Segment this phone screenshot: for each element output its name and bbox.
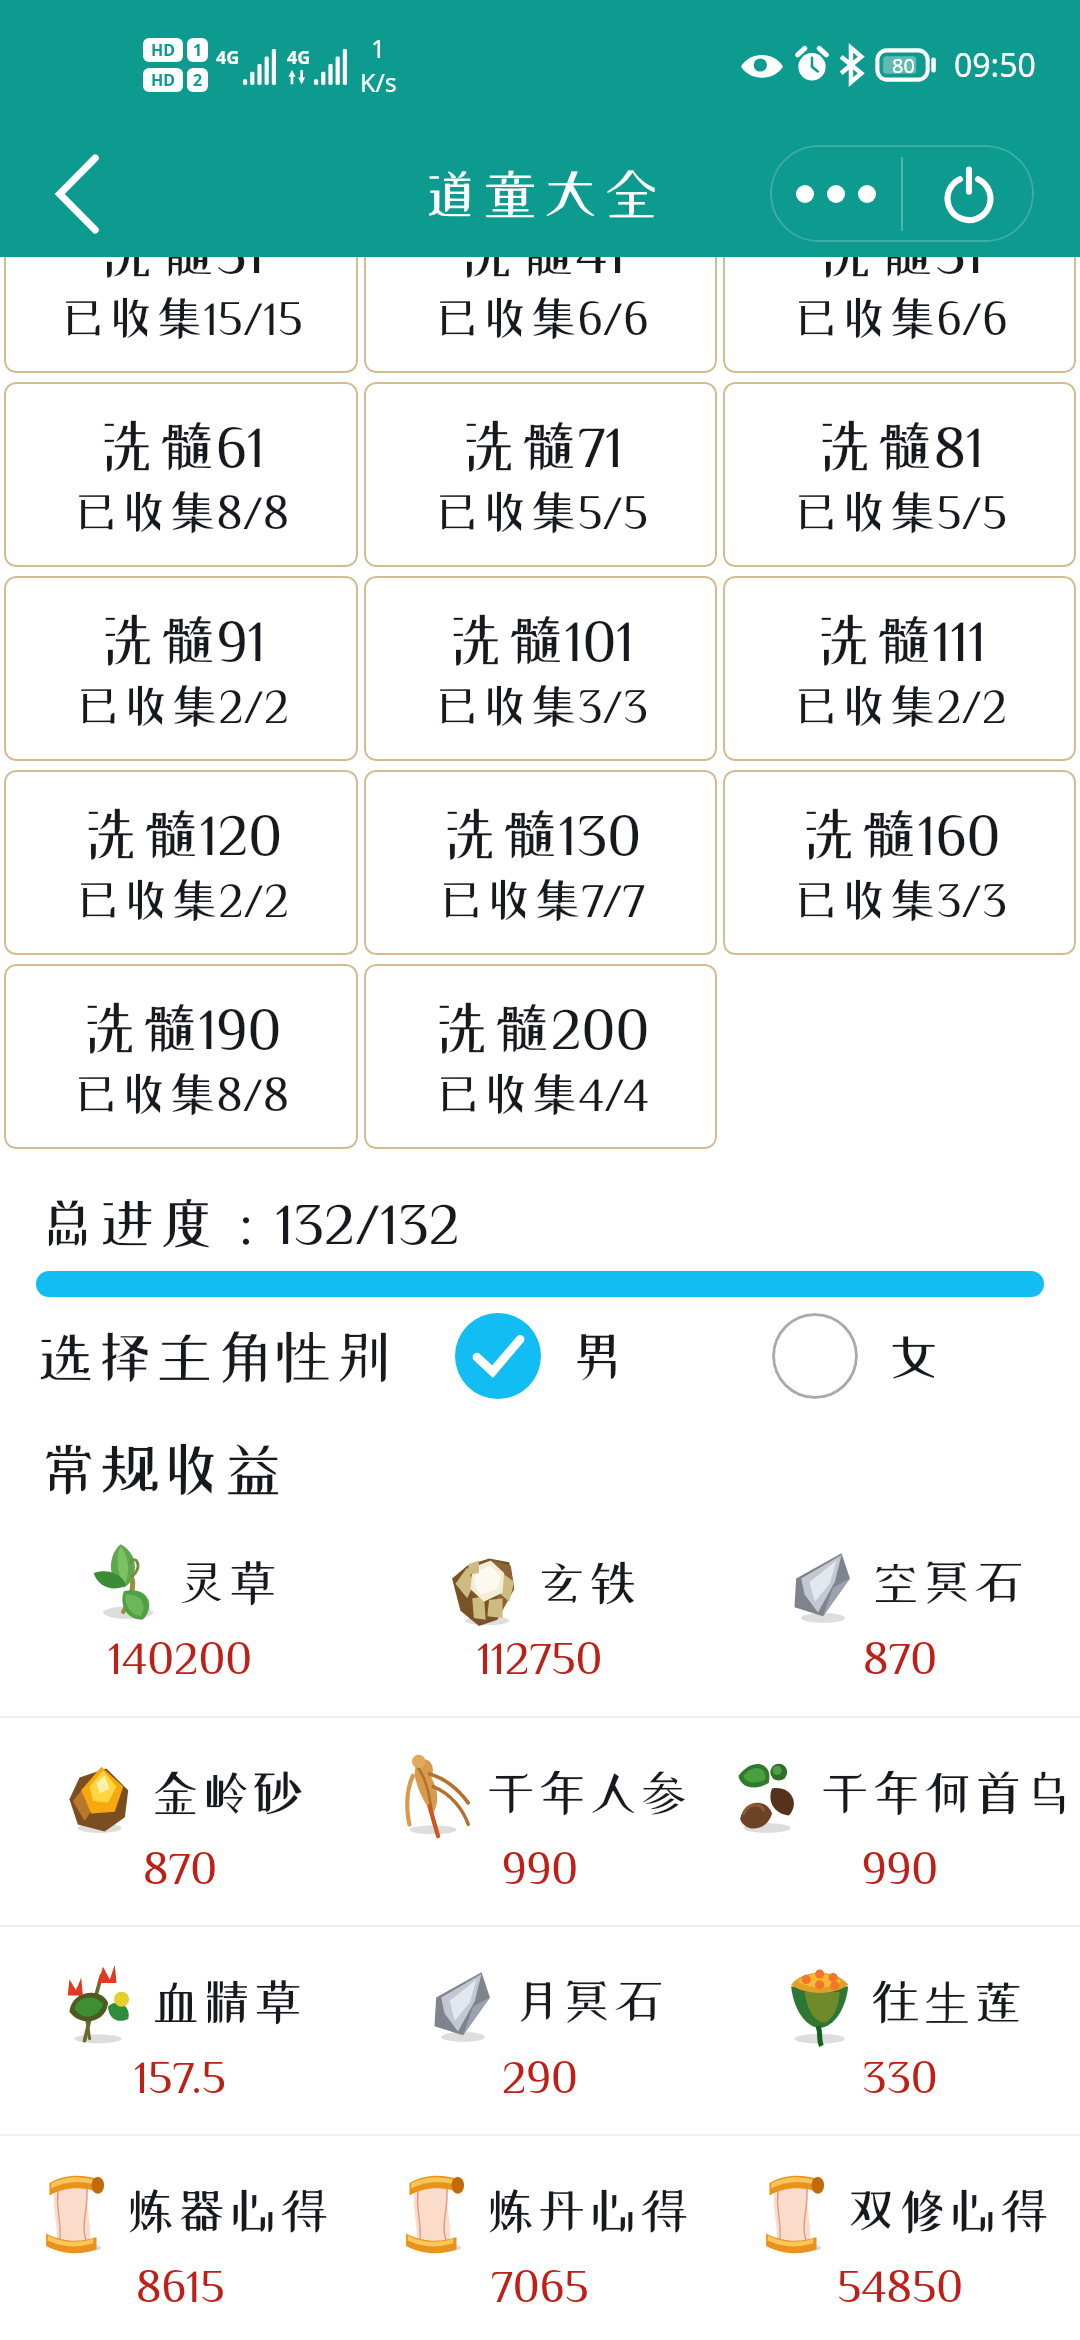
button[interactable]: 千年人参 <box>360 1718 720 1925</box>
staticText: 990 <box>862 1844 939 1890</box>
staticText: 洗髓200 <box>432 998 650 1056</box>
button[interactable]: 金岭砂 <box>0 1718 360 1925</box>
button[interactable]: Back <box>32 149 122 239</box>
staticText: 已收集8/8 <box>72 488 290 535</box>
staticText: K/s <box>360 65 397 99</box>
staticText: 洗髓190 <box>80 998 282 1056</box>
staticText: 290 <box>502 2053 578 2099</box>
button[interactable]: 洗髓101 <box>364 576 717 761</box>
button[interactable]: 玄铁 <box>360 1508 720 1716</box>
staticText: 已收集2/2 <box>74 876 289 923</box>
staticText: 洗髓101 <box>446 610 635 668</box>
button[interactable]: 洗髓81 <box>723 382 1076 567</box>
staticText: 洗髓51 <box>816 257 984 280</box>
button[interactable]: 男 <box>455 1306 627 1406</box>
staticText: 洗髓41 <box>457 257 626 280</box>
staticText: 洗髓61 <box>97 416 265 474</box>
button[interactable]: 洗髓41 <box>364 257 717 373</box>
staticText: 金岭砂 <box>150 1767 304 1817</box>
staticText: 990 <box>502 1844 579 1890</box>
staticText: 80 <box>892 52 915 79</box>
button[interactable]: 千年何首乌 <box>720 1718 1080 1925</box>
staticText: 1 <box>193 39 203 61</box>
button[interactable]: 空冥石 <box>720 1508 1080 1716</box>
staticText: 灵草 <box>176 1557 279 1607</box>
button[interactable]: 月冥石 <box>360 1927 720 2134</box>
staticText: 双修心得 <box>845 2185 1050 2235</box>
staticText: 玄铁 <box>536 1557 639 1607</box>
button[interactable]: 洗髓120 <box>4 770 358 955</box>
staticText: 总进度：132/132 <box>38 1193 460 1251</box>
staticText: 已收集8/8 <box>72 1070 290 1117</box>
button[interactable]: 洗髓61 <box>4 382 358 567</box>
staticText: 洗髓71 <box>459 416 623 474</box>
staticText: 千年人参 <box>485 1767 690 1817</box>
staticText: 157.5 <box>134 2053 226 2099</box>
button[interactable]: 洗髓130 <box>364 770 717 955</box>
staticText: 洗髓130 <box>440 804 642 862</box>
button[interactable]: 炼器心得 <box>0 2136 360 2340</box>
staticText: 330 <box>862 2053 938 2099</box>
staticText: 男 <box>567 1327 627 1385</box>
button[interactable]: 洗髓190 <box>4 964 358 1149</box>
staticText: 洗髓91 <box>98 610 266 668</box>
staticText: 8615 <box>136 2262 225 2308</box>
staticText: HD <box>151 69 175 91</box>
button[interactable]: 洗髓71 <box>364 382 717 567</box>
staticText: 已收集6/6 <box>792 294 1008 341</box>
staticText: 洗髓81 <box>815 416 984 474</box>
button[interactable]: 血精草 <box>0 1927 360 2134</box>
staticText: 已收集2/2 <box>74 682 289 729</box>
staticText: 洗髓31 <box>97 257 265 280</box>
staticText: 870 <box>143 1844 218 1890</box>
staticText: 道童大全 <box>421 165 663 221</box>
staticText: 54850 <box>837 2262 964 2308</box>
staticText: 已收集6/6 <box>433 294 649 341</box>
button[interactable]: 往生莲 <box>720 1927 1080 2134</box>
staticText: 血精草 <box>150 1976 304 2026</box>
staticText: 2 <box>193 69 203 91</box>
staticText: 4G <box>287 45 311 70</box>
staticText: 已收集5/5 <box>792 488 1007 535</box>
staticText: 已收集3/3 <box>433 682 648 729</box>
staticText: 870 <box>863 1634 938 1680</box>
staticText: 4G <box>216 45 240 70</box>
staticText: 已收集3/3 <box>792 876 1007 923</box>
button[interactable]: 洗髓160 <box>723 770 1076 955</box>
button[interactable]: 洗髓200 <box>364 964 717 1149</box>
button[interactable]: More options <box>770 145 901 242</box>
button[interactable]: 洗髓91 <box>4 576 358 761</box>
staticText: 月冥石 <box>510 1976 664 2026</box>
staticText: HD <box>151 39 175 61</box>
button[interactable]: Power <box>903 145 1034 242</box>
staticText: 1 <box>371 31 386 65</box>
button[interactable]: 炼丹心得 <box>360 2136 720 2340</box>
button[interactable]: 灵草 <box>0 1508 360 1716</box>
staticText: 已收集7/7 <box>437 876 645 923</box>
button[interactable]: 洗髓31 <box>4 257 358 373</box>
button[interactable]: 洗髓111 <box>723 576 1076 761</box>
staticText: 已收集15/15 <box>59 294 303 341</box>
staticText: 已收集4/4 <box>434 1070 649 1117</box>
button[interactable]: 双修心得 <box>720 2136 1080 2340</box>
staticText: 炼丹心得 <box>485 2185 690 2235</box>
staticText: 常规收益 <box>38 1438 284 1498</box>
staticText: 140200 <box>108 1634 253 1680</box>
staticText: 千年何首乌 <box>819 1767 1075 1817</box>
staticText: 女 <box>884 1327 944 1385</box>
staticText: 已收集2/2 <box>792 682 1007 729</box>
staticText: 洗髓111 <box>814 610 986 668</box>
staticText: 112750 <box>477 1634 603 1680</box>
staticText: 09:50 <box>954 43 1036 87</box>
button[interactable]: 女 <box>772 1306 944 1406</box>
staticText: 洗髓160 <box>799 804 1001 862</box>
button[interactable]: 洗髓51 <box>723 257 1076 373</box>
staticText: 往生莲 <box>870 1976 1024 2026</box>
staticText: 洗髓120 <box>81 804 283 862</box>
staticText: 已收集5/5 <box>433 488 648 535</box>
staticText: 选择主角性别 <box>36 1327 393 1385</box>
staticText: 空冥石 <box>870 1557 1024 1607</box>
staticText: 炼器心得 <box>125 2185 330 2235</box>
staticText: 7065 <box>491 2262 589 2308</box>
